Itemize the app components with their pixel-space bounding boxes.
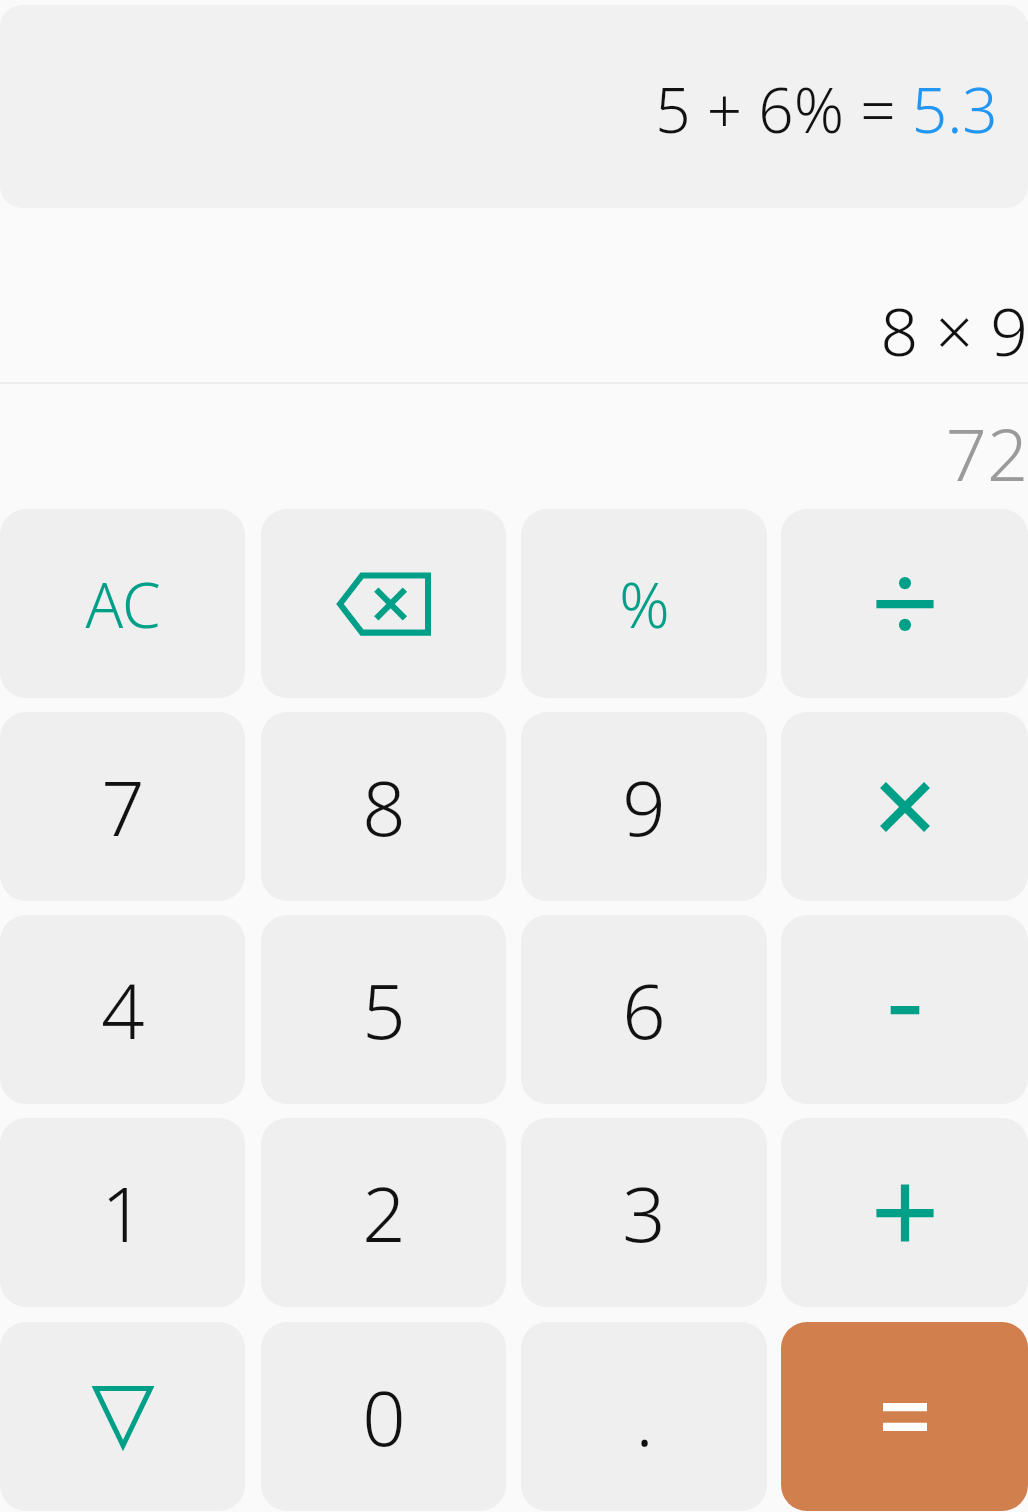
- button[interactable]: .: [521, 1322, 767, 1511]
- staticText: 5: [362, 958, 406, 1062]
- button[interactable]: Minus: [781, 915, 1028, 1104]
- staticText: 4: [101, 958, 145, 1062]
- staticText: 8: [362, 755, 406, 859]
- button[interactable]: Collapse keypad: [0, 1322, 245, 1511]
- button[interactable]: Backspace: [261, 509, 506, 698]
- button[interactable]: 7: [0, 712, 245, 901]
- button[interactable]: 2: [261, 1118, 506, 1307]
- button[interactable]: 5 + 6% = 5.3: [0, 5, 1028, 208]
- staticText: .: [635, 1365, 654, 1469]
- button[interactable]: 9: [521, 712, 767, 901]
- staticText: 0: [362, 1365, 406, 1469]
- button[interactable]: Plus: [781, 1118, 1028, 1307]
- button[interactable]: AC: [0, 509, 245, 698]
- button[interactable]: 1: [0, 1118, 245, 1307]
- button[interactable]: 4: [0, 915, 245, 1104]
- button[interactable]: 8: [261, 712, 506, 901]
- staticText: 72: [0, 404, 1028, 502]
- staticText: 3: [622, 1161, 666, 1265]
- button[interactable]: %: [521, 509, 767, 698]
- staticText: 6: [622, 958, 666, 1062]
- button[interactable]: Multiply: [781, 712, 1028, 901]
- button[interactable]: 3: [521, 1118, 767, 1307]
- button[interactable]: Equals: [781, 1322, 1028, 1511]
- staticText: 2: [362, 1161, 406, 1265]
- button[interactable]: 6: [521, 915, 767, 1104]
- staticText: AC: [85, 562, 161, 646]
- button[interactable]: 0: [261, 1322, 506, 1511]
- staticText: 7: [101, 755, 145, 859]
- staticText: 8 × 9: [0, 285, 1028, 375]
- button[interactable]: Divide: [781, 509, 1028, 698]
- staticText: 1: [101, 1161, 145, 1265]
- staticText: 5 + 6% = 5.3: [655, 67, 998, 151]
- button[interactable]: 5: [261, 915, 506, 1104]
- staticText: 9: [622, 755, 666, 859]
- staticText: %: [619, 562, 670, 646]
